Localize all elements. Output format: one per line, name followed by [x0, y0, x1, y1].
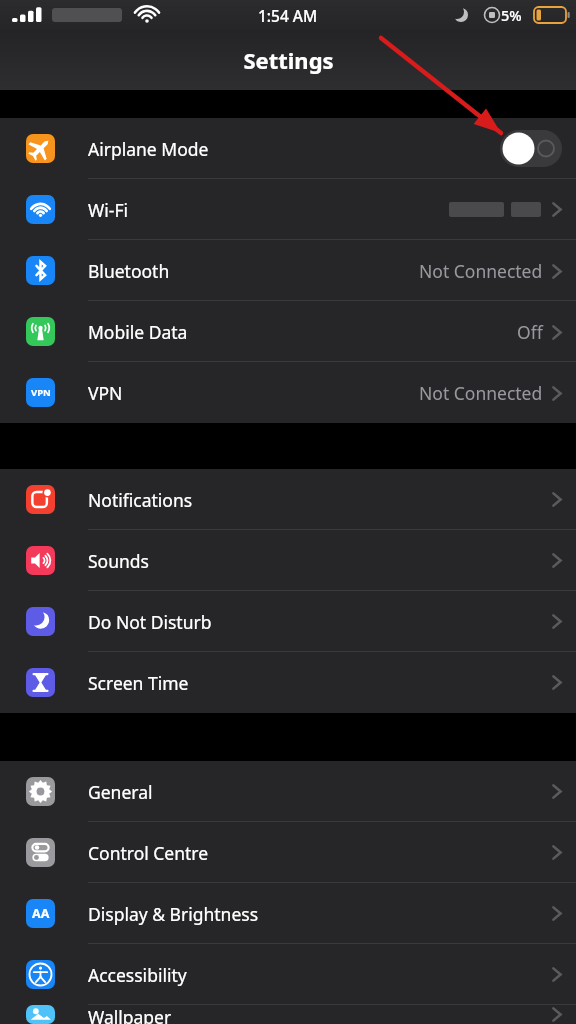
- staticText: Not Connected: [419, 259, 543, 283]
- staticText: VPN: [31, 386, 51, 399]
- staticText: Do Not Disturb: [88, 610, 212, 634]
- button[interactable]: VPN: [0, 362, 576, 423]
- staticText: Notifications: [88, 488, 193, 512]
- staticText: 5%: [501, 5, 522, 25]
- button[interactable]: Do Not Disturb: [0, 591, 576, 652]
- button[interactable]: Wi-Fi: [0, 179, 576, 240]
- staticText: 1:54 AM: [258, 5, 318, 26]
- button[interactable]: Wallpaper: [0, 1005, 576, 1024]
- staticText: Off: [517, 320, 543, 344]
- button[interactable]: Notifications: [0, 469, 576, 530]
- staticText: Sounds: [88, 549, 149, 573]
- button[interactable]: Bluetooth: [0, 240, 576, 301]
- staticText: Airplane Mode: [88, 137, 209, 161]
- staticText: Screen Time: [88, 671, 189, 695]
- staticText: Settings: [243, 45, 334, 75]
- staticText: AA: [32, 905, 50, 922]
- staticText: Mobile Data: [88, 320, 188, 344]
- staticText: Control Centre: [88, 841, 209, 865]
- staticText: VPN: [88, 381, 123, 405]
- staticText: Bluetooth: [88, 259, 170, 283]
- staticText: Not Connected: [419, 381, 543, 405]
- button[interactable]: Airplane Mode toggle, off: [500, 130, 562, 167]
- button[interactable]: Control Centre: [0, 822, 576, 883]
- staticText: General: [88, 780, 153, 804]
- button[interactable]: Sounds: [0, 530, 576, 591]
- staticText: Wi-Fi: [88, 198, 129, 222]
- button[interactable]: AA: [0, 883, 576, 944]
- button[interactable]: Screen Time: [0, 652, 576, 713]
- staticText: Display & Brightness: [88, 902, 259, 926]
- button[interactable]: Airplane Mode: [0, 118, 576, 179]
- button[interactable]: Mobile Data: [0, 301, 576, 362]
- button[interactable]: General: [0, 761, 576, 822]
- staticText: Accessibility: [88, 963, 187, 987]
- staticText: Wallpaper: [88, 1005, 172, 1024]
- button[interactable]: Accessibility: [0, 944, 576, 1005]
